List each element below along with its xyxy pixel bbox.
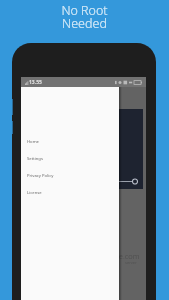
staticText: Home	[27, 139, 39, 145]
staticText: Privacy Policy	[27, 173, 54, 179]
button[interactable]: Privacy Policy	[27, 167, 119, 184]
staticText: le.com	[117, 251, 140, 261]
button[interactable]: Home	[27, 133, 119, 150]
staticText: Settings	[27, 156, 43, 162]
staticText: No Root Needed	[61, 2, 108, 32]
button[interactable]: Settings	[27, 150, 119, 167]
staticText: server	[125, 260, 137, 265]
staticText: License	[27, 190, 42, 196]
staticText: 13.55	[29, 79, 42, 86]
button[interactable]: License	[27, 184, 119, 201]
